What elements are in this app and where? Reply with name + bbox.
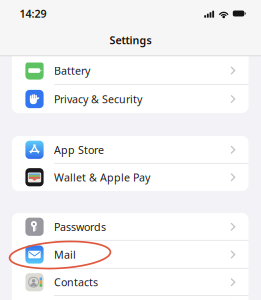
staticText: Settings [109,33,151,47]
button[interactable]: Privacy & Security [12,85,248,113]
staticText: Mail [54,247,76,262]
button[interactable]: Contacts [12,268,248,296]
button[interactable]: Mail [12,240,248,268]
staticText: Passwords [54,220,106,234]
staticText: App Store [54,143,104,157]
button[interactable]: Wallet & Apple Pay [12,163,248,191]
button[interactable]: Battery [12,56,248,85]
staticText: Contacts [54,275,98,289]
button[interactable]: App Store [12,136,248,163]
staticText: 14:29 [19,6,46,21]
button[interactable]: Passwords [12,213,248,240]
staticText: Wallet & Apple Pay [54,170,150,184]
staticText: Privacy & Security [54,92,142,106]
staticText: Battery [54,63,90,78]
